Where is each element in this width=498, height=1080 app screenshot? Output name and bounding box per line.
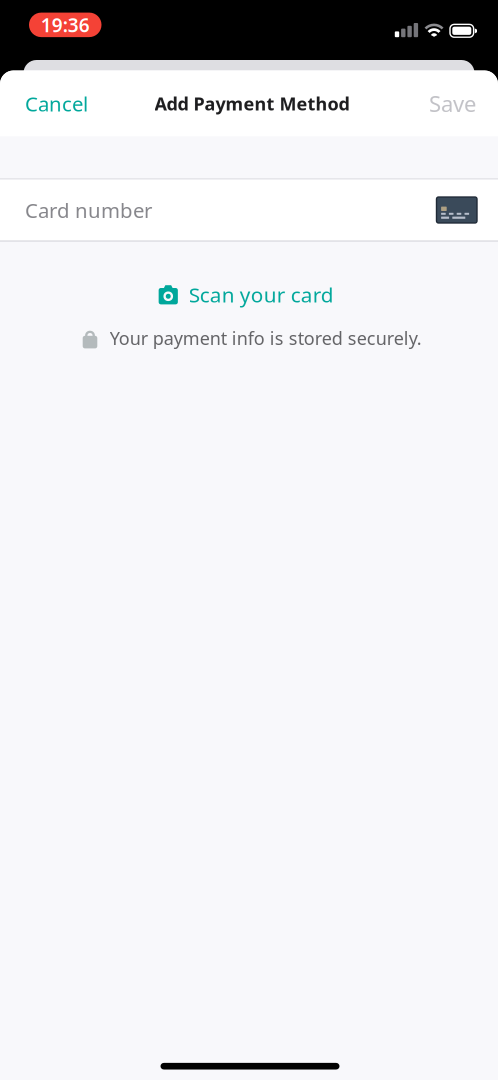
staticText: 19:36 — [41, 12, 90, 38]
staticText: Cancel — [25, 90, 88, 117]
staticText: Add Payment Method — [154, 91, 349, 116]
button[interactable]: Cancel — [0, 70, 109, 136]
button[interactable]: Scan your card — [146, 241, 352, 313]
button[interactable]: Save — [408, 70, 498, 136]
staticText: Your payment info is stored securely. — [110, 326, 422, 350]
staticText: Save — [429, 88, 476, 118]
button[interactable]: Card number — [0, 179, 498, 240]
staticText: Card number — [25, 196, 152, 224]
staticText: Scan your card — [189, 280, 334, 309]
